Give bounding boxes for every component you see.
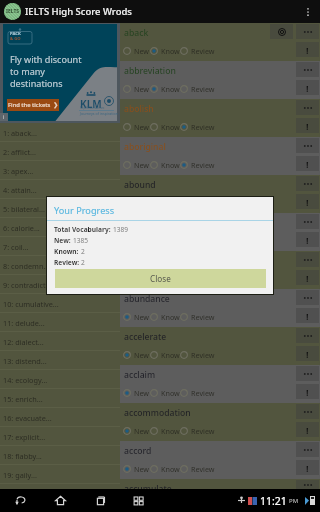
button[interactable]: Word options <box>296 214 319 229</box>
button[interactable]: accord <box>120 441 320 479</box>
button[interactable]: 18: flabby... <box>0 446 120 465</box>
button[interactable]: Word options <box>296 138 319 153</box>
button[interactable]: 11: delude... <box>0 313 120 332</box>
button[interactable]: New <box>123 312 150 322</box>
button[interactable]: Word options <box>296 100 319 115</box>
button[interactable]: accommodation <box>120 403 320 441</box>
button[interactable]: Review <box>180 122 215 132</box>
button[interactable]: Know <box>150 46 180 56</box>
button[interactable]: 5: bilateral... <box>0 199 120 218</box>
button[interactable]: Report <box>296 422 319 437</box>
button[interactable]: New <box>123 350 150 360</box>
button[interactable]: New <box>123 84 150 94</box>
button[interactable]: Recents <box>90 489 110 512</box>
button[interactable]: acclaim <box>120 365 320 403</box>
button[interactable]: Word options <box>296 328 319 343</box>
button[interactable]: 16: evacuate... <box>0 408 120 427</box>
button[interactable]: Word options <box>296 176 319 191</box>
button[interactable]: 10: cumulative... <box>0 294 120 313</box>
button[interactable]: abound <box>120 175 320 213</box>
button[interactable]: Pronounce <box>270 24 293 39</box>
button[interactable]: Review <box>180 312 215 322</box>
button[interactable]: accelerate <box>120 327 320 365</box>
button[interactable]: Know <box>150 160 180 170</box>
button[interactable]: Review <box>180 464 215 474</box>
button[interactable]: 4: attain... <box>0 180 120 199</box>
button[interactable]: abbreviation <box>120 61 320 99</box>
button[interactable]: abrupt <box>120 251 320 289</box>
button[interactable]: Close <box>55 269 266 288</box>
button[interactable]: Home <box>50 489 70 512</box>
button[interactable]: Report <box>296 232 319 247</box>
button[interactable]: Know <box>150 274 180 284</box>
button[interactable]: Report <box>296 42 319 57</box>
button[interactable]: 3: apex... <box>0 161 120 180</box>
button[interactable]: Review <box>180 388 215 398</box>
button[interactable]: Report <box>296 384 319 399</box>
button[interactable]: abrasion <box>120 213 320 251</box>
button[interactable]: New <box>123 501 150 511</box>
button[interactable]: 17: explicit... <box>0 427 120 446</box>
button[interactable]: Report <box>296 80 319 95</box>
button[interactable]: Back <box>10 489 30 512</box>
button[interactable]: Report <box>296 346 319 361</box>
button[interactable]: Word options <box>296 62 319 77</box>
button[interactable]: Review <box>180 160 215 170</box>
button[interactable]: Review <box>180 426 215 436</box>
button[interactable]: 19: gaily... <box>0 465 120 484</box>
button[interactable]: New <box>123 388 150 398</box>
button[interactable]: Report <box>296 270 319 285</box>
button[interactable]: Keyboard <box>128 489 148 512</box>
button[interactable]: Know <box>150 426 180 436</box>
button[interactable]: 12: dialect... <box>0 332 120 351</box>
button[interactable]: New <box>123 464 150 474</box>
button[interactable]: aback <box>120 23 320 61</box>
button[interactable]: More options <box>299 0 317 23</box>
button[interactable]: Know <box>150 84 180 94</box>
button[interactable]: Know <box>150 312 180 322</box>
button[interactable]: Know <box>150 122 180 132</box>
button[interactable]: Know <box>150 350 180 360</box>
button[interactable]: aboriginal <box>120 137 320 175</box>
button[interactable]: Word options <box>296 366 319 381</box>
button[interactable]: Report <box>296 460 319 475</box>
button[interactable]: New <box>123 122 150 132</box>
button[interactable]: 2: afflict... <box>0 142 120 161</box>
button[interactable]: PACK <box>3 24 117 121</box>
button[interactable]: 6: calorie... <box>0 218 120 237</box>
button[interactable]: Report <box>296 498 319 508</box>
button[interactable]: Report <box>296 194 319 209</box>
button[interactable]: Report <box>296 156 319 171</box>
button[interactable]: 9: contradict... <box>0 275 120 294</box>
button[interactable]: abundance <box>120 289 320 327</box>
button[interactable]: Word options <box>296 252 319 267</box>
button[interactable]: Review <box>180 84 215 94</box>
button[interactable]: 7: coil... <box>0 237 120 256</box>
button[interactable]: Report <box>296 118 319 133</box>
button[interactable]: Know <box>150 464 180 474</box>
button[interactable]: accumulate <box>120 479 320 489</box>
button[interactable]: Know <box>150 388 180 398</box>
button[interactable]: Find the tickets ❯ <box>7 99 59 111</box>
button[interactable]: Report <box>296 308 319 323</box>
button[interactable]: New <box>123 426 150 436</box>
button[interactable]: Word options <box>296 480 319 490</box>
button[interactable]: New <box>123 46 150 56</box>
button[interactable]: 15: enrich... <box>0 389 120 408</box>
button[interactable]: Word options <box>296 404 319 419</box>
button[interactable]: abolish <box>120 99 320 137</box>
button[interactable]: Word options <box>296 290 319 305</box>
button[interactable]: 8: condemn... <box>0 256 120 275</box>
button[interactable]: Word options <box>296 24 319 39</box>
button[interactable]: Review <box>180 350 215 360</box>
button[interactable]: 1: aback... <box>0 123 120 142</box>
